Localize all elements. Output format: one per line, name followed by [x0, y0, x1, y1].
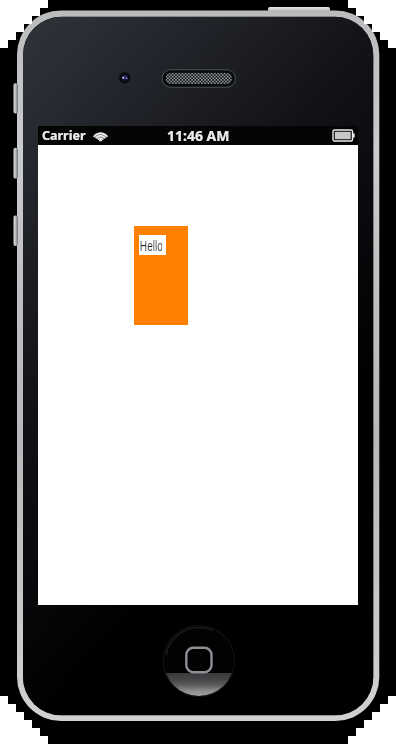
- other: Battery full: [333, 130, 355, 141]
- button[interactable]: Carrier: [38, 126, 358, 145]
- staticText: Hello: [140, 237, 162, 254]
- staticText: 11:46 AM: [167, 126, 230, 145]
- staticText: Carrier: [42, 127, 86, 144]
- button[interactable]: Hello: [134, 226, 188, 325]
- other: Wi-Fi signal: [92, 130, 109, 142]
